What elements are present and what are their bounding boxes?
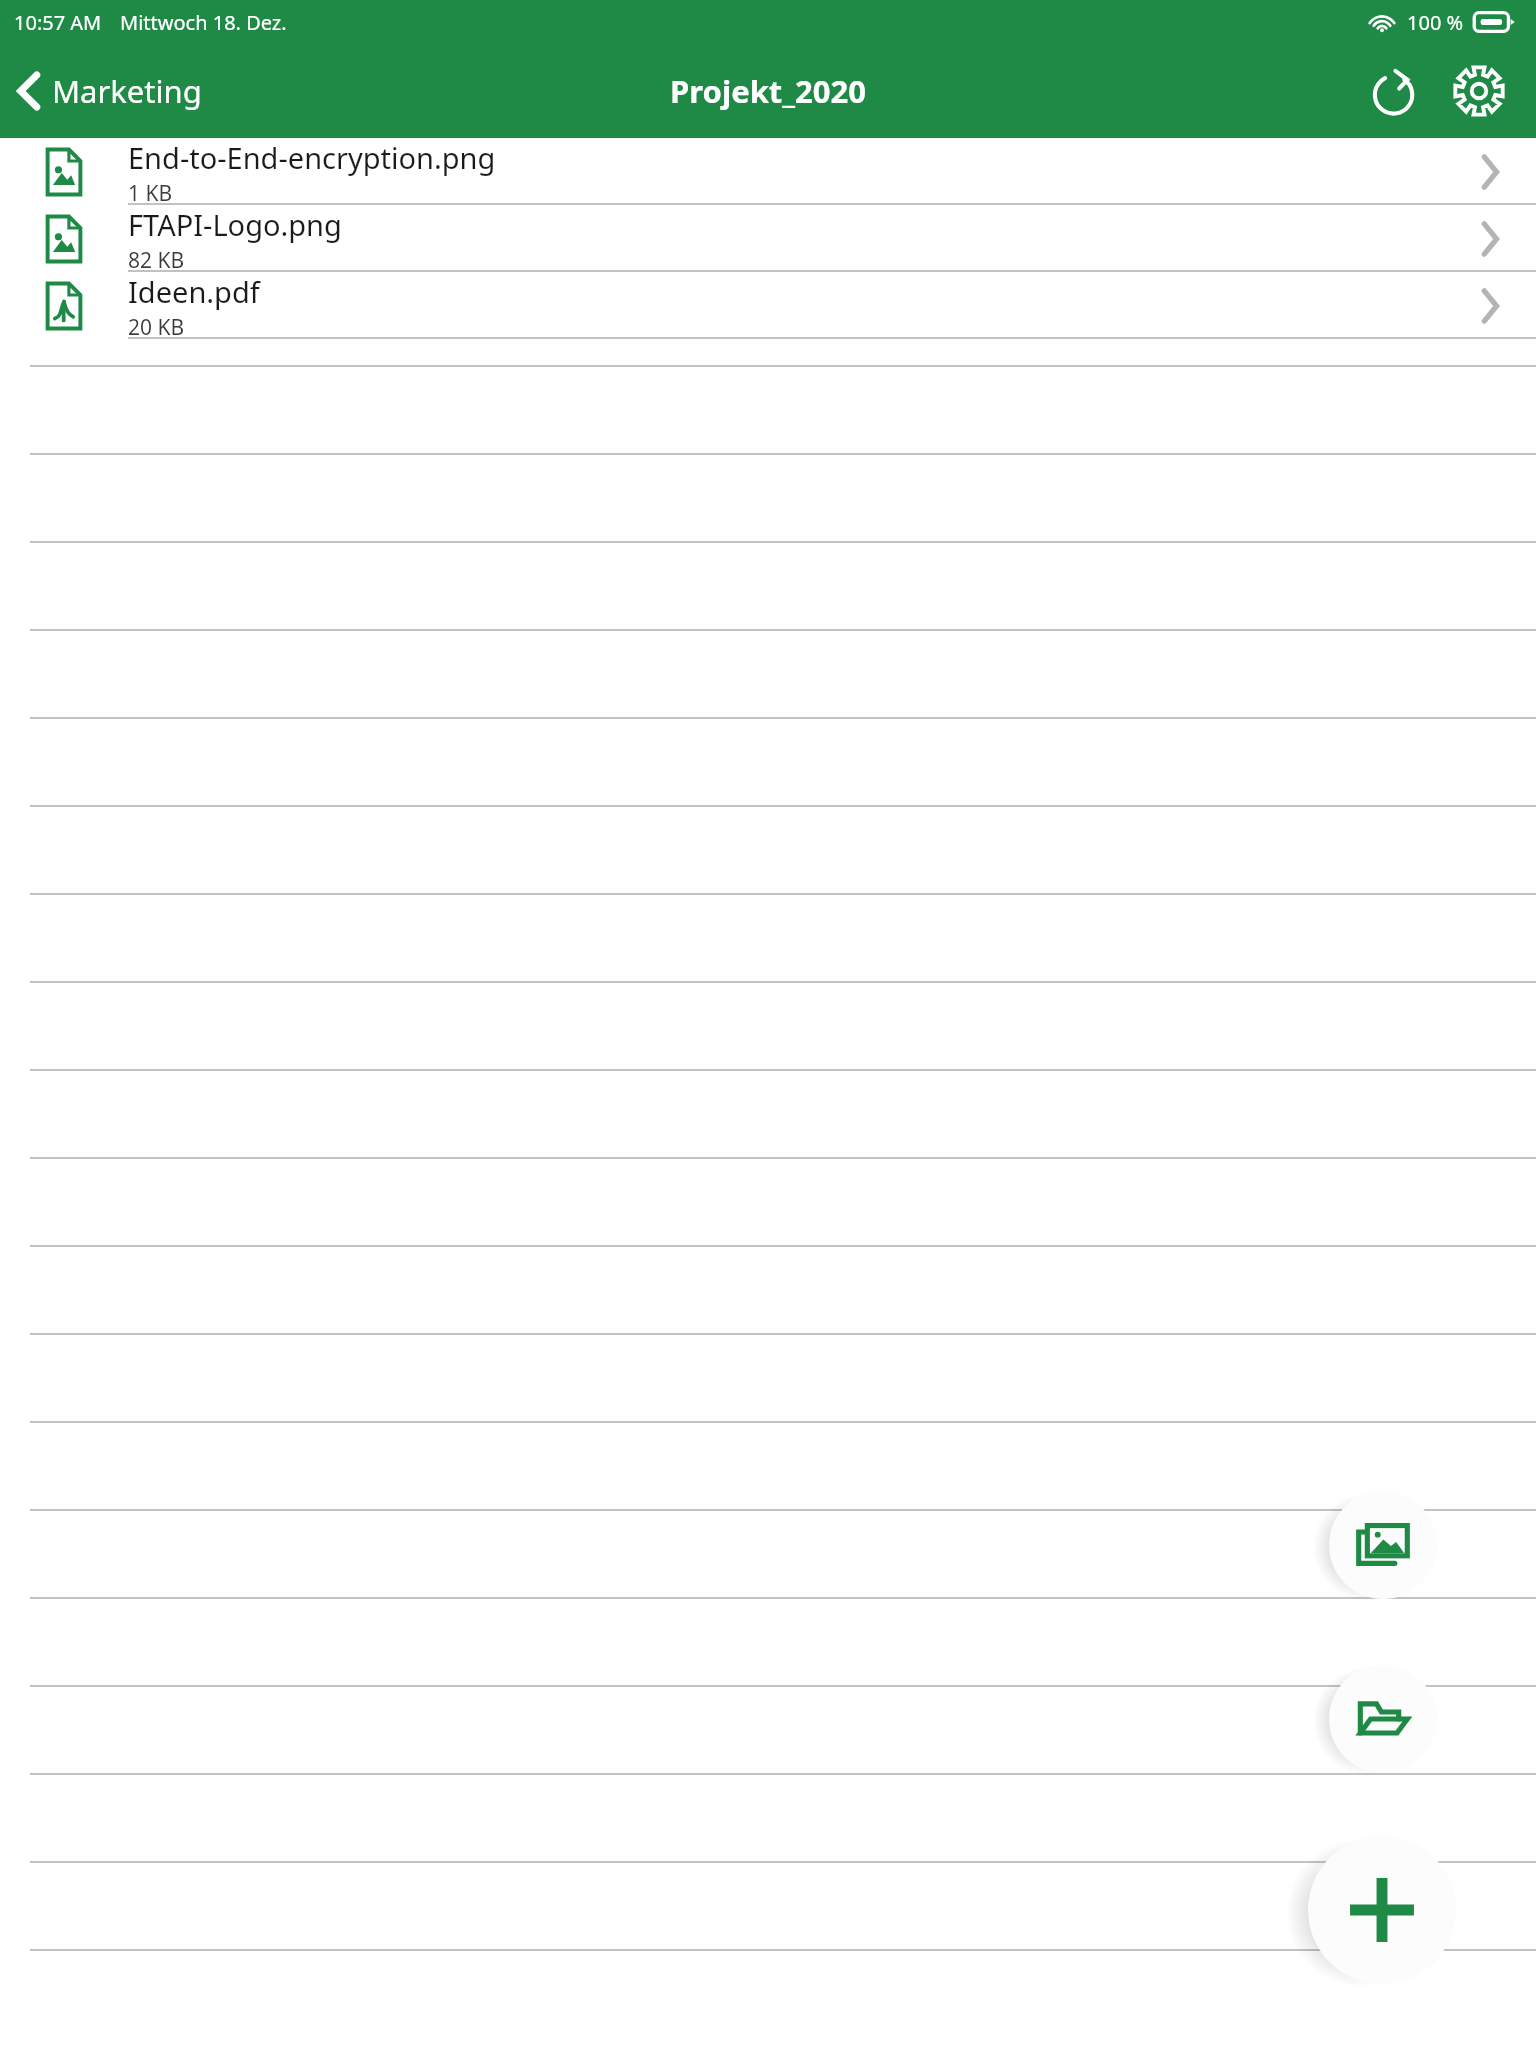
staticText: Ideen.pdf <box>128 272 260 311</box>
staticText: 10:57 AM <box>14 9 102 36</box>
button[interactable]: FTAPI-Logo.png <box>0 205 1536 272</box>
staticText: End-to-End-encryption.png <box>128 138 496 177</box>
staticText: 20 KB <box>128 313 185 339</box>
staticText: 1 KB <box>128 179 173 205</box>
button[interactable]: Upload photo <box>1329 1491 1437 1599</box>
button[interactable]: Refresh <box>1356 52 1434 130</box>
button[interactable]: Add <box>1308 1836 1456 1984</box>
staticText: FTAPI-Logo.png <box>128 205 342 244</box>
staticText: Marketing <box>52 70 202 112</box>
button[interactable]: End-to-End-encryption.png <box>0 138 1536 205</box>
button[interactable]: Settings <box>1440 52 1518 130</box>
staticText: 100 % <box>1407 9 1464 36</box>
staticText: 82 KB <box>128 246 185 272</box>
staticText: Projekt_2020 <box>670 70 866 112</box>
button[interactable]: Marketing <box>0 58 216 124</box>
button[interactable]: New folder <box>1329 1665 1437 1773</box>
staticText: Mittwoch 18. Dez. <box>120 9 287 36</box>
button[interactable]: Ideen.pdf <box>0 272 1536 339</box>
